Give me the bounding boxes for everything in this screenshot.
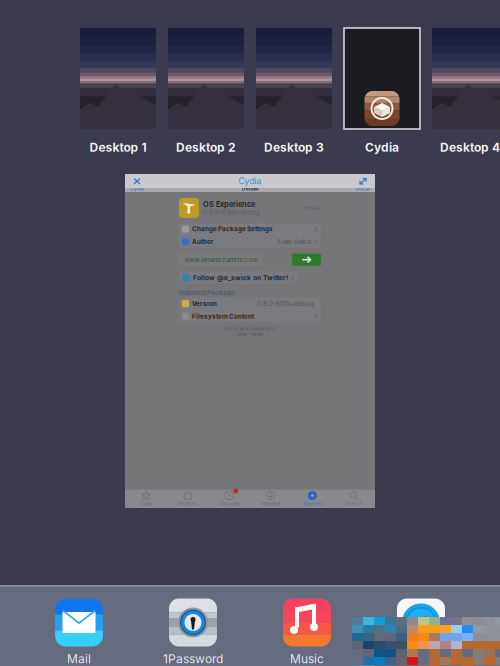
staticText: Author — [192, 238, 214, 245]
staticText: Evan Swick — [278, 238, 311, 245]
staticText: Changes — [219, 501, 239, 506]
staticText: Mail — [67, 651, 91, 666]
staticText: com.pranck.osexperience — [224, 326, 275, 332]
staticText: Installed — [261, 501, 280, 506]
staticText: view all — [304, 205, 321, 211]
staticText: Desktop 4 — [440, 140, 500, 154]
button[interactable]: Follow @e_swick on Twitter! — [179, 272, 298, 284]
button[interactable]: Cydia — [344, 28, 420, 159]
button[interactable]: Safari — [373, 598, 469, 666]
button[interactable]: Desktop 1 — [80, 28, 156, 159]
staticText: Filesystem Content — [192, 313, 254, 320]
button[interactable]: Installed — [250, 489, 292, 508]
staticText: Cydia — [238, 176, 261, 186]
staticText: Music — [290, 651, 324, 666]
button[interactable]: Music — [259, 598, 355, 666]
staticText: Installed Package — [179, 289, 235, 296]
staticText: 0.8.0-6150+debug — [257, 300, 314, 307]
staticText: Change Package Settings — [192, 225, 273, 233]
staticText: Safari — [404, 651, 438, 666]
button[interactable]: Version — [179, 298, 321, 310]
button[interactable]: Expand window — [351, 174, 375, 188]
button[interactable]: Mail — [31, 598, 127, 666]
button[interactable]: Search — [333, 489, 375, 508]
staticText: Desktop 3 — [264, 140, 324, 154]
staticText: Version — [192, 300, 217, 307]
button[interactable]: Cydia — [125, 489, 167, 508]
button[interactable]: Desktop 3 — [256, 28, 332, 159]
staticText: swick · Tweaks — [236, 332, 263, 337]
staticText: OS Experience — [203, 200, 255, 209]
staticText: Cydia — [130, 185, 144, 192]
staticText: www.kimarscharters.com — [184, 256, 257, 263]
staticText: Desktop 1 — [89, 140, 146, 154]
staticText: Install — [356, 185, 370, 192]
button[interactable]: Sources — [292, 489, 333, 508]
staticText: 1Password — [163, 651, 223, 666]
button[interactable]: Sections — [167, 489, 208, 508]
staticText: Sections — [178, 501, 197, 506]
button[interactable]: Filesystem Content — [179, 310, 321, 322]
button[interactable]: Close window — [125, 174, 149, 188]
staticText: Cydia — [140, 501, 152, 506]
staticText: Follow @e_swick on Twitter! — [193, 274, 288, 282]
staticText: 0.8.0-6150+debug — [203, 209, 260, 216]
staticText: Details — [241, 185, 258, 192]
staticText: Desktop 2 — [176, 140, 236, 154]
button[interactable]: Change Package Settings — [179, 223, 321, 235]
staticText: Cydia — [365, 140, 399, 154]
button[interactable]: Open website — [292, 254, 321, 266]
staticText: Sources — [303, 501, 322, 506]
button[interactable]: Author — [179, 236, 321, 248]
button[interactable]: Desktop 2 — [168, 28, 244, 159]
staticText: Search — [345, 501, 362, 506]
button[interactable]: Desktop 4 — [432, 28, 500, 159]
button[interactable]: Changes — [208, 489, 250, 508]
button[interactable]: 1Password — [145, 598, 241, 666]
